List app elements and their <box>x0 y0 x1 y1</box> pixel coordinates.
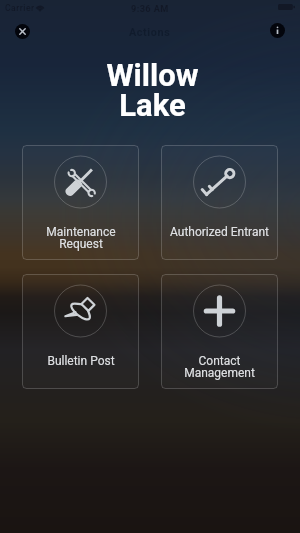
button[interactable]: Info <box>270 23 285 38</box>
staticText: Maintenance Request <box>46 225 116 251</box>
button[interactable]: Maintenance Request <box>22 145 139 260</box>
button[interactable]: Authorized Entrant <box>161 145 278 260</box>
button[interactable]: Bulletin Post <box>22 274 139 389</box>
staticText: Carrier <box>5 3 35 13</box>
staticText: Actions <box>129 26 171 39</box>
staticText: Willow Lake <box>106 57 199 123</box>
staticText: Bulletin Post <box>47 354 115 368</box>
button[interactable]: Contact Management <box>161 274 278 389</box>
staticText: 9:36 AM <box>131 3 169 14</box>
button[interactable]: Close <box>15 24 30 39</box>
staticText: Authorized Entrant <box>170 225 269 239</box>
staticText: Contact Management <box>184 354 255 380</box>
